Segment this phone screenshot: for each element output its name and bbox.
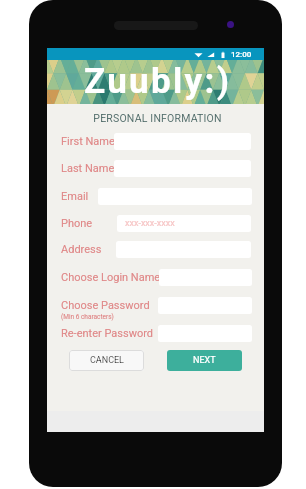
staticText: Address xyxy=(61,243,102,256)
staticText: 12:00 xyxy=(231,50,252,59)
staticText: Email xyxy=(61,190,89,203)
staticText: Last Name xyxy=(61,162,115,175)
staticText: NEXT xyxy=(193,355,216,366)
staticText: PERSONAL INFORMATION xyxy=(49,112,266,124)
staticText: Zuubly:) xyxy=(84,61,232,102)
staticText: First Name xyxy=(61,135,115,148)
staticText: (Min 6 characters) xyxy=(61,313,114,321)
staticText: Re-enter Password xyxy=(61,327,154,340)
staticText: Choose Login Name xyxy=(61,271,161,284)
button[interactable]: CANCEL xyxy=(69,350,144,371)
staticText: CANCEL xyxy=(90,355,124,366)
staticText: Phone xyxy=(61,217,93,230)
button[interactable]: xxx-xxx-xxxx xyxy=(117,215,251,232)
button[interactable]: NEXT xyxy=(167,350,242,371)
staticText: xxx-xxx-xxxx xyxy=(125,218,175,229)
staticText: Choose Password xyxy=(61,299,150,312)
